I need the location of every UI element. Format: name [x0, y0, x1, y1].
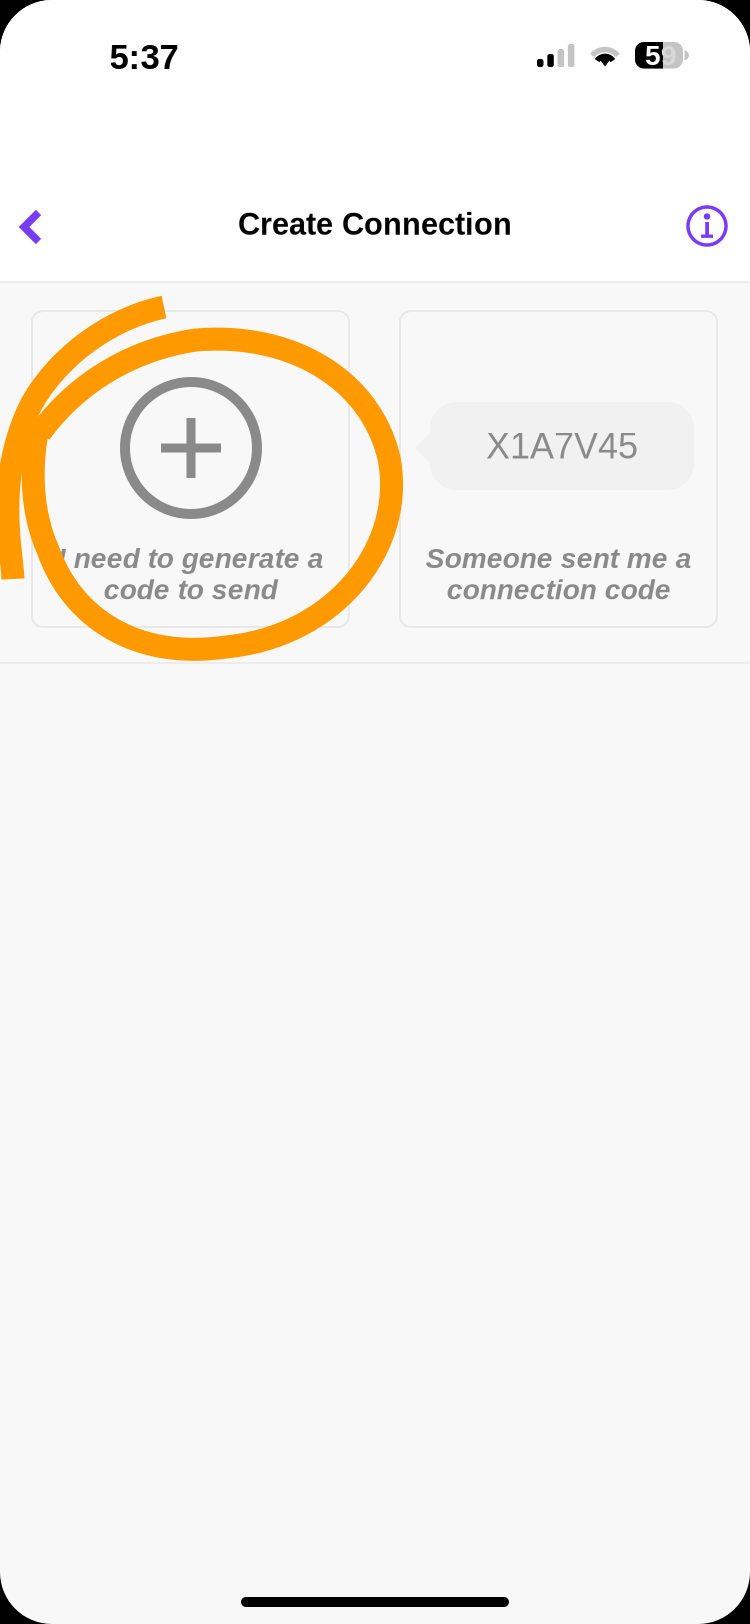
button[interactable]: Information [676, 190, 738, 262]
staticText: I need to generate a code to send [57, 543, 323, 605]
staticText: 5:37 [109, 38, 178, 76]
staticText: 59 [645, 40, 677, 71]
button[interactable]: I need to generate a code to send [31, 310, 350, 628]
staticText: Create Connection [238, 207, 512, 241]
staticText: X1A7V45 [486, 426, 638, 466]
button[interactable]: X1A7V45 [399, 310, 718, 628]
staticText: Someone sent me a connection code [425, 543, 691, 605]
button[interactable]: Back [0, 188, 62, 266]
staticText: 59 [645, 40, 677, 71]
